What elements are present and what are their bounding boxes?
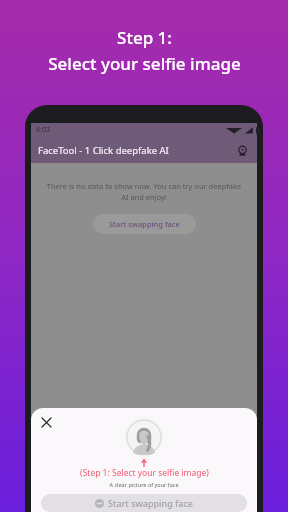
staticText: 6:03 bbox=[36, 125, 50, 135]
button[interactable]: Face AI bbox=[234, 142, 250, 158]
staticText: (Step 1: Select your selfie image) bbox=[80, 467, 209, 479]
button[interactable]: Start swapping face bbox=[93, 214, 196, 234]
staticText: Step 1: bbox=[117, 26, 172, 49]
staticText: A clear picture of your face bbox=[109, 481, 179, 488]
button[interactable]: Close bbox=[37, 413, 55, 431]
button[interactable]: Start swapping face bbox=[41, 494, 247, 512]
staticText: Start swapping face bbox=[109, 219, 180, 229]
staticText: FaceTool - 1 Click deepfake AI bbox=[38, 144, 169, 157]
staticText: Select your selfie image bbox=[48, 52, 241, 75]
staticText: Start swapping face bbox=[108, 497, 194, 509]
button[interactable]: Select selfie image bbox=[125, 418, 163, 456]
staticText: There is no data to show now. You can tr… bbox=[43, 181, 245, 202]
